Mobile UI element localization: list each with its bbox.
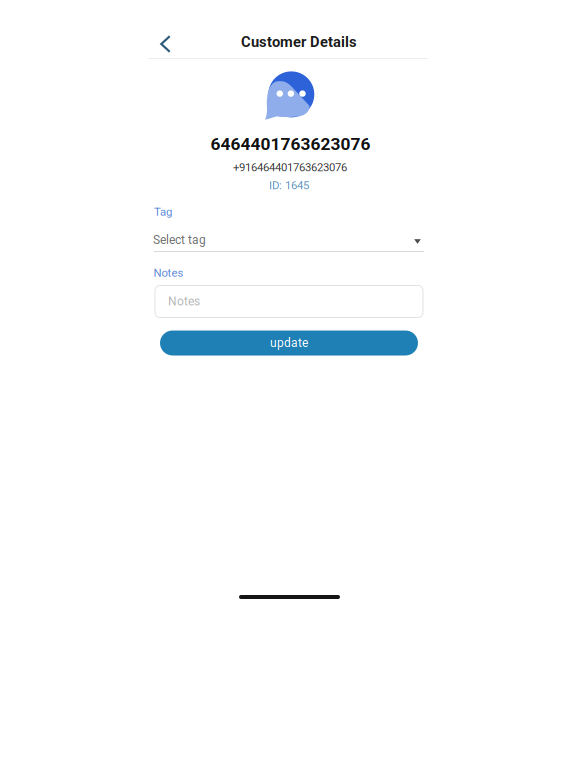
staticText: Notes	[153, 266, 183, 280]
button[interactable]: Back	[152, 28, 178, 60]
button[interactable]: Select tag	[154, 218, 424, 252]
staticText: Tag	[154, 205, 172, 219]
staticText: Select tag	[153, 233, 206, 247]
staticText: ID: 1645	[269, 179, 309, 192]
button[interactable]: update	[160, 330, 418, 355]
staticText: Notes	[168, 294, 200, 309]
staticText: Customer Details	[241, 33, 357, 51]
staticText: 6464401763623076	[210, 134, 370, 154]
staticText: +916464401763623076	[233, 161, 347, 174]
staticText: update	[270, 336, 308, 350]
button[interactable]: Notes	[155, 285, 423, 317]
